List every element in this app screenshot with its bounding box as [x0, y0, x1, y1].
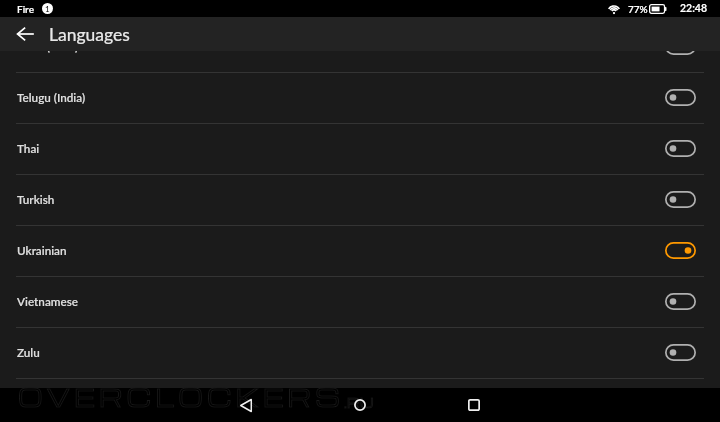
staticText: OVERCLOCKERS [18, 380, 344, 413]
staticText: Vietnamese [17, 294, 78, 308]
button[interactable]: Ukrainian [0, 226, 720, 276]
staticText: .RU [344, 393, 374, 411]
button[interactable]: Vietnamese [0, 277, 720, 327]
staticText: Languages [49, 24, 130, 45]
button[interactable]: Back [229, 388, 263, 422]
staticText: Tamil (India) [17, 51, 79, 53]
button[interactable]: Tamil (India) [0, 51, 720, 72]
button[interactable]: Navigate up [8, 17, 42, 51]
button[interactable]: Zulu [0, 328, 720, 378]
staticText: 77% [628, 3, 648, 15]
button[interactable]: Telugu (India) [0, 73, 720, 123]
staticText: 22:48 [680, 2, 708, 15]
staticText: Fire [17, 3, 34, 15]
button[interactable]: Turkish [0, 175, 720, 225]
staticText: Ukrainian [17, 243, 67, 257]
button[interactable]: Recent apps [457, 388, 491, 422]
button[interactable]: Home [343, 388, 377, 422]
staticText: Thai [17, 141, 40, 155]
staticText: Telugu (India) [17, 90, 86, 104]
button[interactable]: Thai [0, 124, 720, 174]
staticText: Zulu [17, 345, 40, 359]
staticText: 1 [45, 4, 50, 14]
staticText: Turkish [17, 192, 55, 206]
